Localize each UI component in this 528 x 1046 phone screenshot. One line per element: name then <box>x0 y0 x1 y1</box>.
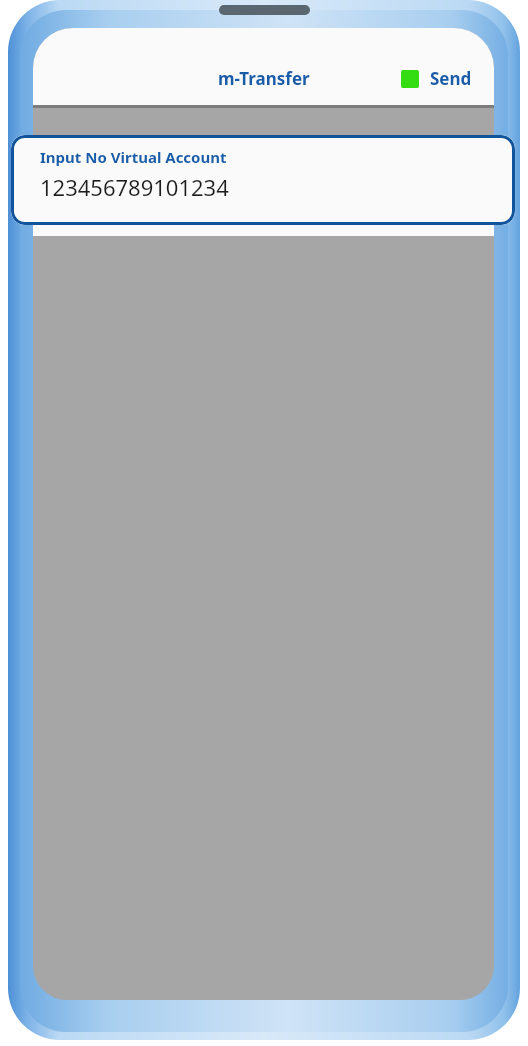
staticText: Dari Rekening <box>55 149 161 169</box>
staticText: 3213123242 <box>55 173 130 191</box>
button[interactable]: Input No Virtual Account <box>11 135 515 225</box>
staticText: 123456789101234 <box>40 172 229 202</box>
button[interactable]: Dari Rekening <box>33 135 494 201</box>
button[interactable]: Send <box>379 61 494 96</box>
staticText: Send <box>430 67 472 90</box>
staticText: m-Transfer <box>218 67 310 90</box>
staticText: Input No Virtual Account <box>40 147 227 167</box>
